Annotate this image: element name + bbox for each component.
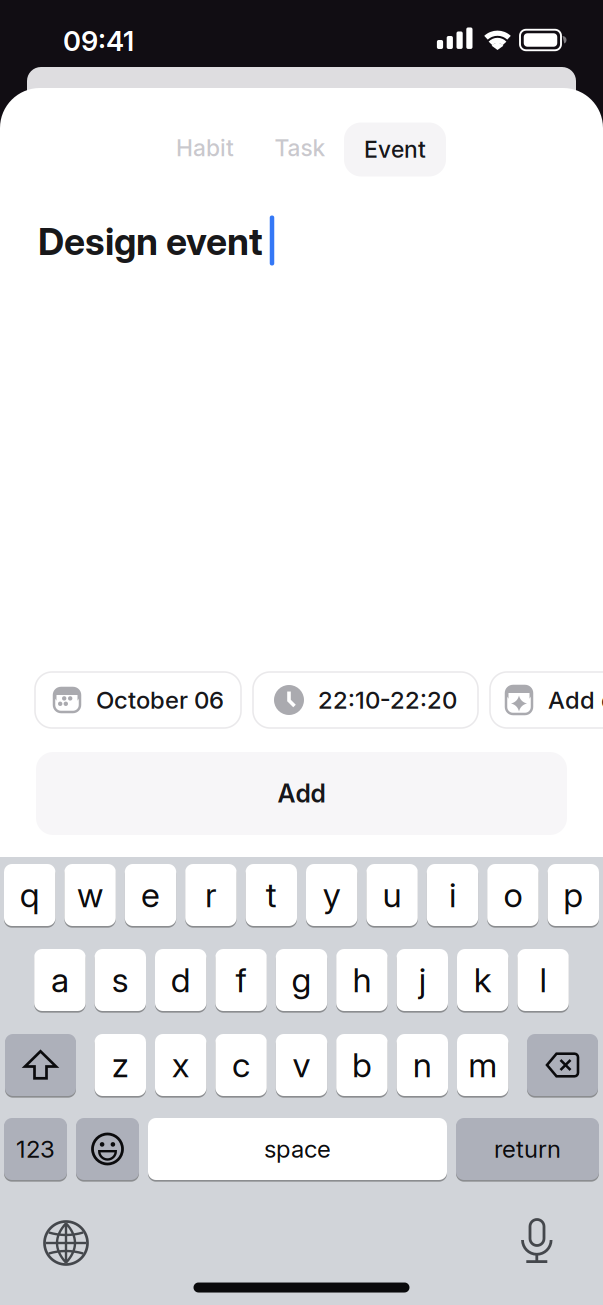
staticText: f <box>236 959 247 1000</box>
staticText: x <box>172 1044 190 1085</box>
staticText: n <box>413 1044 432 1085</box>
button[interactable]: o <box>487 864 539 926</box>
staticText: p <box>563 874 583 915</box>
button[interactable]: t <box>246 864 297 926</box>
button[interactable]: z <box>95 1034 146 1096</box>
button[interactable]: r <box>185 864 237 926</box>
staticText: r <box>205 874 217 915</box>
staticText: l <box>540 959 547 1000</box>
button[interactable]: v <box>276 1034 327 1096</box>
button[interactable]: Numbers <box>4 1118 67 1180</box>
button[interactable]: w <box>64 864 116 926</box>
staticText: q <box>20 874 40 915</box>
button[interactable]: October 06 <box>35 672 241 728</box>
staticText: c <box>232 1044 250 1085</box>
button[interactable]: Next keyboard <box>44 1221 87 1264</box>
staticText: t <box>266 874 277 915</box>
button[interactable]: b <box>336 1034 388 1096</box>
staticText: October 06 <box>96 685 224 714</box>
staticText: i <box>449 874 456 915</box>
staticText: a <box>51 959 69 1000</box>
button[interactable]: l <box>517 949 569 1011</box>
button[interactable]: e <box>125 864 176 926</box>
button[interactable]: i <box>427 864 478 926</box>
button[interactable]: Shift <box>5 1034 76 1096</box>
staticText: Task <box>274 134 325 162</box>
button[interactable]: p <box>548 864 599 926</box>
button[interactable]: y <box>306 864 357 926</box>
staticText: h <box>352 959 371 1000</box>
button[interactable]: return <box>456 1118 599 1180</box>
staticText: e <box>141 874 160 915</box>
button[interactable]: j <box>397 949 448 1011</box>
button[interactable]: h <box>336 949 388 1011</box>
staticText: z <box>112 1044 129 1085</box>
staticText: space <box>264 1134 331 1163</box>
staticText: m <box>468 1044 497 1085</box>
button[interactable]: u <box>366 864 418 926</box>
button[interactable]: f <box>215 949 267 1011</box>
staticText: u <box>383 874 402 915</box>
staticText: v <box>292 1044 310 1085</box>
staticText: Design event <box>38 219 263 264</box>
button[interactable]: d <box>155 949 206 1011</box>
button[interactable]: x <box>155 1034 206 1096</box>
button[interactable]: space <box>148 1118 447 1180</box>
button[interactable]: c <box>215 1034 267 1096</box>
staticText: o <box>503 874 522 915</box>
staticText: j <box>419 959 426 1000</box>
button[interactable]: Habit <box>176 134 234 162</box>
button[interactable]: k <box>457 949 508 1011</box>
button[interactable]: Delete <box>527 1034 598 1096</box>
staticText: k <box>474 959 492 1000</box>
staticText: 123 <box>16 1134 55 1163</box>
staticText: Add <box>277 778 325 809</box>
staticText: b <box>352 1044 372 1085</box>
staticText: s <box>112 959 129 1000</box>
button[interactable]: a <box>34 949 86 1011</box>
button[interactable]: s <box>95 949 146 1011</box>
staticText: return <box>494 1134 561 1163</box>
staticText: Add category <box>548 685 603 714</box>
button[interactable]: Event <box>344 122 446 176</box>
button[interactable]: Add <box>36 752 567 835</box>
button[interactable]: n <box>397 1034 448 1096</box>
button[interactable]: m <box>457 1034 508 1096</box>
button[interactable]: Add category <box>490 672 603 728</box>
staticText: g <box>291 959 311 1000</box>
button[interactable]: Task <box>274 134 325 162</box>
staticText: 09:41 <box>63 24 134 58</box>
staticText: 22:10-22:20 <box>318 685 457 714</box>
button[interactable]: Emoji <box>76 1118 139 1180</box>
staticText: d <box>171 959 191 1000</box>
staticText: y <box>323 874 341 915</box>
staticText: Habit <box>176 134 234 162</box>
button[interactable]: q <box>4 864 55 926</box>
button[interactable]: 22:10-22:20 <box>253 672 478 728</box>
button[interactable]: g <box>276 949 327 1011</box>
staticText: w <box>77 874 103 915</box>
staticText: Event <box>364 136 426 163</box>
button[interactable]: Dictate <box>522 1219 552 1263</box>
